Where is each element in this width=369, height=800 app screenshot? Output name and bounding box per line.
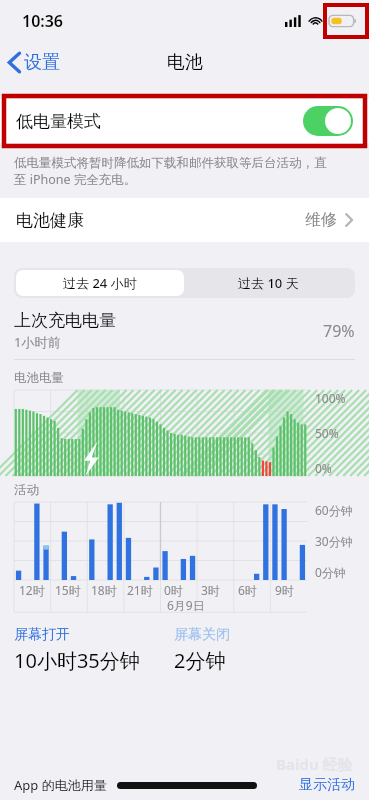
staticText: 电池电量 [14, 370, 64, 386]
staticText: 0时 [164, 582, 183, 598]
staticText: 100% [315, 390, 346, 406]
button[interactable]: 低电量模式开关 [303, 106, 353, 136]
staticText: 至 iPhone 完全充电。 [14, 171, 137, 188]
staticText: 2分钟 [174, 647, 226, 674]
staticText: 0分钟 [315, 564, 346, 580]
staticText: 15时 [55, 582, 81, 598]
staticText: 6时 [238, 582, 257, 598]
staticText: 设置 [24, 51, 60, 74]
staticText: 活动 [14, 482, 39, 498]
staticText: 1小时前 [14, 333, 61, 351]
button[interactable]: 显示活动 [299, 776, 355, 794]
staticText: 30分钟 [315, 533, 353, 549]
staticText: 电池健康 [16, 210, 84, 231]
staticText: 过去 24 小时 [63, 274, 137, 292]
staticText: 低电量模式 [16, 111, 101, 132]
staticText: App 的电池用量 [14, 776, 107, 794]
button[interactable]: 过去 24 小时 [16, 270, 184, 296]
button[interactable]: 低电量模式 [0, 99, 369, 143]
staticText: 60分钟 [315, 502, 353, 518]
staticText: 电池 [167, 51, 203, 74]
staticText: 上次充电电量 [14, 310, 116, 331]
staticText: 维修 [305, 210, 337, 230]
staticText: 9时 [275, 582, 294, 598]
staticText: 过去 10 天 [238, 274, 299, 292]
staticText: 6月9日 [167, 597, 205, 613]
staticText: 屏幕打开 [14, 626, 70, 644]
staticText: 21时 [127, 582, 153, 598]
staticText: 10小时35分钟 [14, 647, 140, 674]
staticText: 3时 [201, 582, 220, 598]
staticText: 12时 [19, 582, 45, 598]
staticText: 10:36 [22, 10, 64, 32]
staticText: 79% [323, 320, 355, 342]
staticText: 屏幕关闭 [174, 626, 230, 644]
button[interactable]: 过去 10 天 [184, 270, 353, 296]
staticText: 50% [315, 425, 339, 441]
staticText: 0% [315, 460, 332, 476]
button[interactable]: 设置 [0, 47, 70, 78]
staticText: 18时 [91, 582, 117, 598]
button[interactable]: 电池健康 [0, 198, 369, 242]
staticText: Baidu 经验 [276, 754, 353, 774]
staticText: 低电量模式将暂时降低如下载和邮件获取等后台活动，直 [14, 155, 327, 171]
